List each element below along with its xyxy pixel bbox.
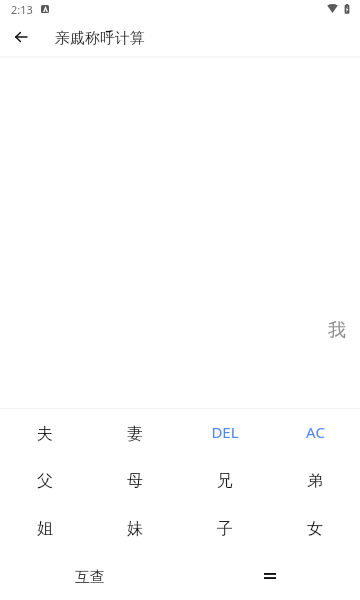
button[interactable]: 女 [270,504,360,552]
staticText: 女 [307,519,323,539]
staticText: 姐 [37,519,53,539]
staticText: DEL [211,422,239,442]
staticText: 我 [328,319,346,342]
staticText: 弟 [307,471,323,491]
staticText: 子 [217,519,233,539]
button[interactable]: 妹 [90,504,180,552]
button[interactable]: 母 [90,456,180,504]
staticText: 夫 [37,424,53,444]
button[interactable]: Equals [180,552,360,600]
button[interactable]: Back [9,25,33,49]
staticText: 兄 [217,471,233,491]
button[interactable]: 夫 [0,409,90,456]
staticText: 父 [37,471,53,491]
button[interactable]: 互查 [0,552,180,600]
staticText: 妻 [127,424,143,444]
button[interactable]: 父 [0,456,90,504]
button[interactable]: 兄 [180,456,270,504]
staticText: AC [306,422,325,442]
button[interactable]: DEL [180,409,270,456]
staticText: 互查 [75,568,105,587]
staticText: 妹 [127,519,143,539]
button[interactable]: 姐 [0,504,90,552]
button[interactable]: 弟 [270,456,360,504]
button[interactable]: 子 [180,504,270,552]
staticText: 母 [127,471,143,491]
staticText: 亲戚称呼计算 [55,29,145,48]
button[interactable]: AC [270,409,360,456]
staticText: 2:13 [11,2,33,17]
button[interactable]: 妻 [90,409,180,456]
